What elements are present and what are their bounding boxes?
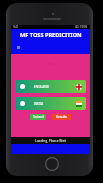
staticText: 9:41: [13, 25, 19, 29]
staticText: INDIA: [34, 102, 43, 106]
button[interactable]: Results: [52, 114, 71, 120]
staticText: MF TOSS PREDICITION: [20, 31, 82, 39]
button[interactable]: Submit: [30, 114, 46, 120]
staticText: Toss: [47, 61, 54, 66]
button[interactable]: MF TOSS PREDICITION: [11, 29, 90, 41]
staticText: Submit: [33, 115, 44, 119]
button[interactable]: ENGLAND: [15, 80, 86, 93]
staticText: ENGLAND: [34, 85, 49, 89]
staticText: Results: [56, 115, 67, 119]
button[interactable]: INDIA: [15, 97, 86, 110]
staticText: Loading, Please Wait: [35, 139, 66, 143]
staticText: 100%: [80, 25, 88, 29]
staticText: 4G: [75, 25, 79, 29]
